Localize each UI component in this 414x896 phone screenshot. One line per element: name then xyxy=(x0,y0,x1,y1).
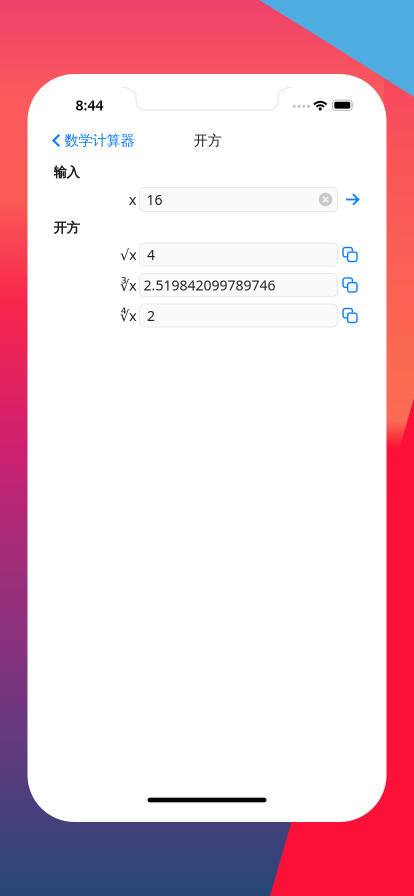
button[interactable]: Copy xyxy=(338,273,362,297)
button[interactable]: 数学计算器 xyxy=(44,125,142,155)
staticText: 开方 xyxy=(194,132,222,149)
staticText: 2 xyxy=(147,306,155,325)
staticText: 开方 xyxy=(53,219,79,236)
button[interactable]: Copy xyxy=(338,303,362,328)
staticText: 数学计算器 xyxy=(64,131,134,149)
button[interactable]: Copy xyxy=(338,242,362,267)
staticText: 2.519842099789746 xyxy=(143,275,275,295)
button[interactable]: 开方 xyxy=(187,127,229,154)
staticText: x xyxy=(129,190,136,209)
staticText: ∜x xyxy=(120,305,137,325)
button[interactable]: Clear xyxy=(313,187,338,212)
staticText: 8:44 xyxy=(75,95,103,115)
staticText: √x xyxy=(120,244,137,264)
staticText: 16 xyxy=(146,190,162,209)
button[interactable]: Calculate xyxy=(340,186,365,213)
staticText: ∛x xyxy=(120,275,137,295)
staticText: 4 xyxy=(147,245,155,264)
staticText: 输入 xyxy=(53,164,79,181)
